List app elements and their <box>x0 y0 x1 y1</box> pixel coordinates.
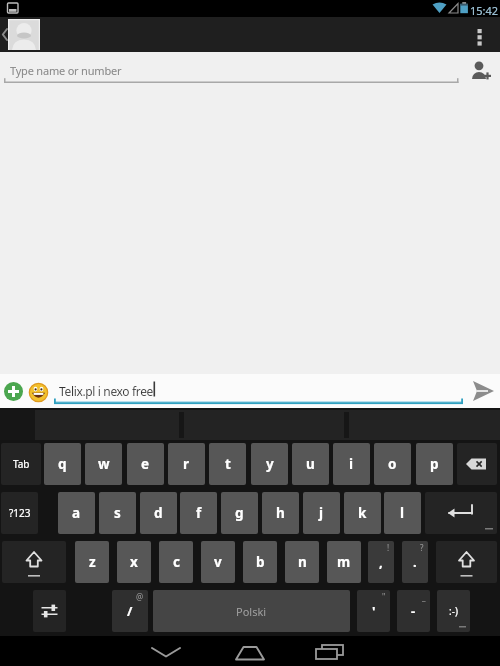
button[interactable] <box>457 443 497 485</box>
button[interactable] <box>146 640 186 662</box>
staticText: v <box>214 553 222 571</box>
staticText: w <box>98 455 110 473</box>
staticText: c <box>173 553 180 571</box>
staticText: h <box>276 504 285 522</box>
staticText: l <box>400 504 405 522</box>
button[interactable]: x <box>117 541 151 583</box>
button[interactable]: p <box>416 443 453 485</box>
button[interactable]: l <box>384 492 421 534</box>
button[interactable]: v <box>201 541 235 583</box>
button[interactable]: a <box>58 492 95 534</box>
staticText: Type name or number <box>10 63 122 78</box>
staticText: p <box>430 455 439 473</box>
staticText: @ <box>136 591 144 602</box>
button[interactable]: k <box>344 492 381 534</box>
button[interactable]: q <box>44 443 81 485</box>
button[interactable]: b <box>243 541 277 583</box>
staticText: - <box>411 602 416 620</box>
button[interactable]: e <box>127 443 164 485</box>
button[interactable]: / <box>112 590 148 632</box>
button[interactable] <box>4 382 23 401</box>
button[interactable] <box>230 640 270 662</box>
staticText: i <box>349 455 354 473</box>
staticText: Polski <box>236 604 267 619</box>
button[interactable]: Polski <box>153 590 350 632</box>
button[interactable]: f <box>180 492 217 534</box>
staticText: ?123 <box>9 506 31 520</box>
staticText: b <box>256 553 265 571</box>
staticText: t <box>225 455 231 473</box>
staticText: q <box>58 455 67 473</box>
button[interactable]: Tab <box>1 443 41 485</box>
staticText: . <box>413 553 417 571</box>
staticText: s <box>114 504 121 522</box>
button[interactable] <box>2 541 66 583</box>
button[interactable] <box>33 590 66 632</box>
staticText: Telix.pl i nexo free <box>59 383 153 399</box>
staticText: x <box>130 553 138 571</box>
button[interactable] <box>436 541 497 583</box>
button[interactable] <box>8 19 40 50</box>
staticText: " <box>382 591 386 602</box>
button[interactable]: z <box>75 541 109 583</box>
button[interactable]: g <box>221 492 258 534</box>
button[interactable]: t <box>209 443 246 485</box>
button[interactable] <box>468 378 498 404</box>
staticText: 15:42 <box>470 3 499 18</box>
button[interactable]: s <box>99 492 136 534</box>
staticText: m <box>337 553 351 571</box>
button[interactable]: r <box>168 443 205 485</box>
button[interactable] <box>466 56 496 84</box>
staticText: u <box>306 455 315 473</box>
staticText: d <box>154 504 163 522</box>
staticText: Tab <box>13 457 30 471</box>
button[interactable] <box>310 640 350 662</box>
button[interactable]: - <box>397 590 430 632</box>
button[interactable]: d <box>140 492 177 534</box>
button[interactable]: u <box>292 443 329 485</box>
button[interactable]: y <box>251 443 288 485</box>
staticText: r <box>183 455 190 473</box>
staticText: f <box>196 504 202 522</box>
button[interactable]: ?123 <box>1 492 38 534</box>
staticText: ? <box>420 542 424 553</box>
button[interactable] <box>29 383 48 402</box>
staticText: n <box>298 553 307 571</box>
staticText: , <box>379 553 383 571</box>
staticText: e <box>141 455 150 473</box>
staticText: j <box>319 504 324 522</box>
button[interactable]: j <box>303 492 340 534</box>
staticText: :-) <box>449 604 458 618</box>
button[interactable] <box>468 22 494 48</box>
button[interactable] <box>0 52 460 85</box>
staticText: ! <box>387 542 390 553</box>
staticText: _ <box>422 591 426 602</box>
button[interactable]: , <box>368 541 394 583</box>
button[interactable]: m <box>327 541 361 583</box>
button[interactable]: h <box>262 492 299 534</box>
staticText: z <box>89 553 96 571</box>
staticText: / <box>127 602 133 620</box>
button[interactable]: n <box>285 541 319 583</box>
staticText: g <box>235 504 244 522</box>
staticText: o <box>388 455 397 473</box>
staticText: k <box>358 504 367 522</box>
button[interactable]: o <box>374 443 411 485</box>
button[interactable]: w <box>85 443 122 485</box>
staticText: ' <box>372 602 376 620</box>
button[interactable] <box>425 492 497 534</box>
staticText: y <box>266 455 274 473</box>
button[interactable]: . <box>402 541 428 583</box>
button[interactable]: ' <box>357 590 390 632</box>
button[interactable]: c <box>159 541 193 583</box>
staticText: a <box>72 504 81 522</box>
button[interactable]: :-) <box>437 590 470 632</box>
button[interactable]: i <box>333 443 370 485</box>
